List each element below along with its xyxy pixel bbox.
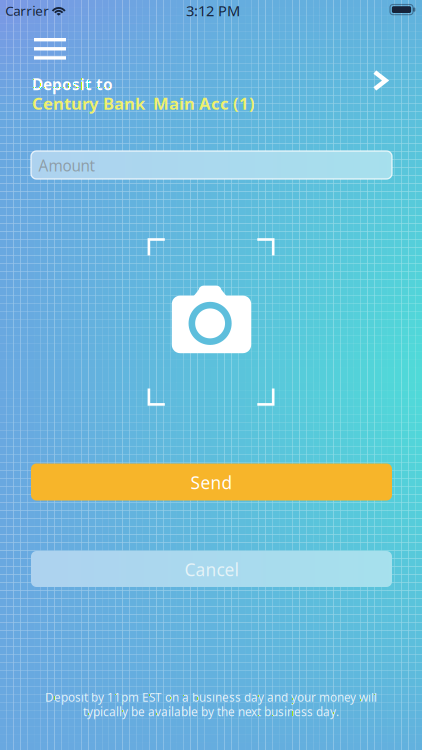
staticText: 3:12 PM [186, 1, 240, 21]
staticText: Deposit to [32, 74, 113, 95]
staticText: Carrier [5, 1, 49, 20]
staticText: Send [190, 471, 232, 494]
staticText: Deposit by 11pm EST on a business day an… [45, 689, 377, 705]
button[interactable]: Amount [31, 151, 392, 179]
button[interactable]: Cancel [31, 551, 392, 587]
button[interactable]: Menu [26, 30, 74, 68]
button[interactable]: Send [31, 463, 392, 500]
button[interactable]: Capture check photo [172, 286, 252, 354]
staticText: Century Bank Main Acc (1) [32, 92, 255, 115]
staticText: Amount [38, 155, 95, 176]
staticText: typically be available by the next busin… [83, 704, 339, 720]
staticText: Cancel [184, 558, 238, 581]
button[interactable]: Choose deposit account [364, 61, 398, 100]
